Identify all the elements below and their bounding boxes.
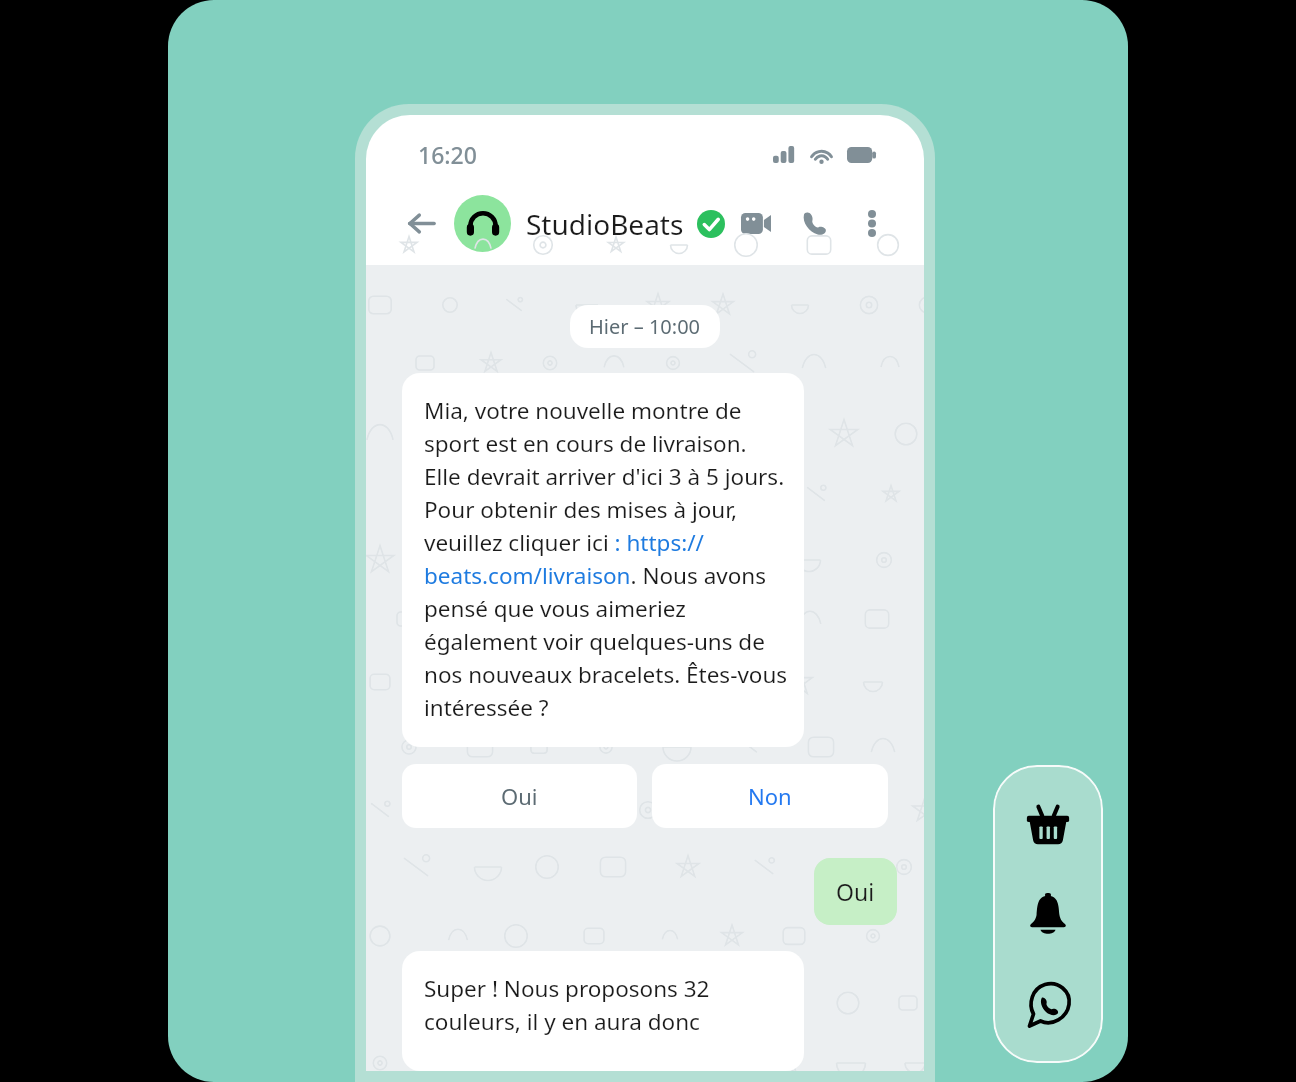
button[interactable]: Shopping basket xyxy=(1016,792,1080,856)
staticText: 16:20 xyxy=(418,139,477,170)
button[interactable]: Oui xyxy=(402,764,637,828)
button[interactable]: Mia, votre nouvelle montre de sport est … xyxy=(402,373,804,747)
staticText: Oui xyxy=(501,781,538,811)
staticText: Non xyxy=(748,781,792,811)
button[interactable]: Call xyxy=(792,201,836,245)
button[interactable]: Non xyxy=(652,764,888,828)
button[interactable]: Notifications xyxy=(1016,882,1080,946)
button[interactable]: WhatsApp xyxy=(1016,973,1080,1037)
button[interactable]: More options xyxy=(850,201,894,245)
button[interactable]: StudioBeats xyxy=(454,195,725,252)
button[interactable]: Super ! Nous proposons 32 couleurs, il y… xyxy=(402,951,804,1071)
staticText: Super ! Nous proposons 32 couleurs, il y… xyxy=(424,973,788,1047)
staticText: Oui xyxy=(836,876,875,907)
button[interactable]: Back xyxy=(400,202,442,244)
staticText: Mia, votre nouvelle montre de sport est … xyxy=(424,395,788,723)
button[interactable]: Oui xyxy=(814,858,897,925)
button[interactable]: Video call xyxy=(734,201,778,245)
staticText: Hier – 10:00 xyxy=(589,313,701,340)
staticText: StudioBeats xyxy=(526,205,684,243)
